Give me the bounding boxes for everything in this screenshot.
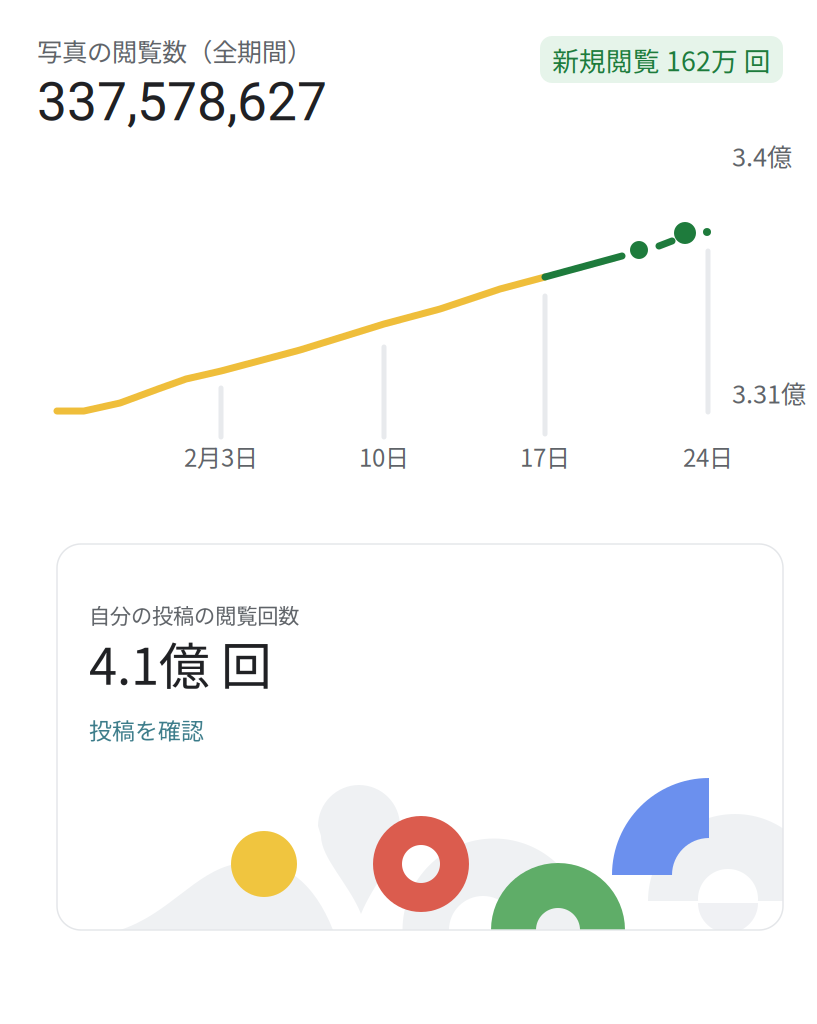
staticText: 3.4億 <box>732 137 792 174</box>
staticText: 自分の投稿の閲覧回数 <box>89 599 299 630</box>
button[interactable]: 新規閲覧 162万 回 <box>540 36 783 83</box>
staticText: 3.31億 <box>732 374 806 411</box>
staticText: 投稿を確認 <box>89 713 204 746</box>
staticText: 写真の閲覧数（全期間） <box>37 32 312 69</box>
staticText: 2月3日 <box>184 439 258 474</box>
staticText: 10日 <box>359 439 409 474</box>
staticText: 24日 <box>683 439 733 474</box>
button[interactable]: 自分の投稿の閲覧回数 <box>57 544 783 930</box>
staticText: 新規閲覧 162万 回 <box>552 40 771 79</box>
staticText: 17日 <box>520 439 570 474</box>
staticText: 337,578,627 <box>37 71 327 133</box>
staticText: 4.1億 回 <box>89 626 272 699</box>
